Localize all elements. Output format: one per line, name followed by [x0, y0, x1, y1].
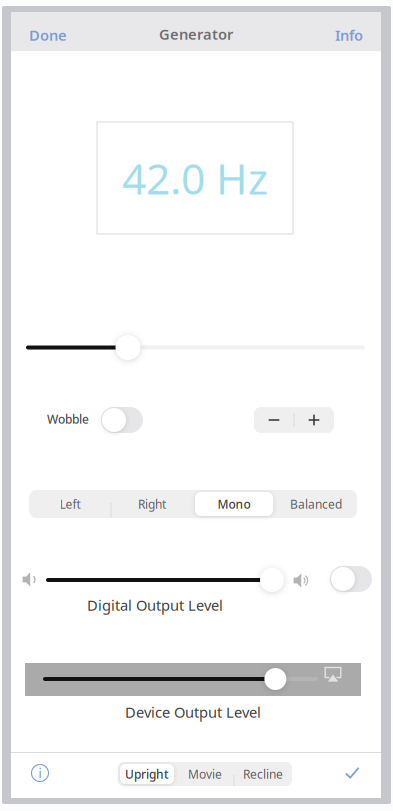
button[interactable]: Recline	[234, 762, 292, 786]
button[interactable]: Decrease frequency	[254, 407, 293, 433]
staticText: Device Output Level	[125, 702, 261, 722]
staticText: Generator	[159, 24, 233, 44]
button[interactable]: Right	[111, 490, 193, 518]
staticText: Done	[29, 25, 67, 45]
staticText: Upright	[125, 766, 169, 782]
staticText: Info	[335, 25, 363, 45]
button[interactable]: Info	[28, 761, 52, 785]
staticText: Wobble	[47, 411, 89, 427]
button[interactable]: Movie	[176, 762, 234, 786]
button[interactable]: Increase frequency	[294, 407, 333, 433]
button[interactable]: Wobble	[101, 407, 143, 433]
staticText: Recline	[243, 766, 283, 782]
button[interactable]: AirPlay	[323, 665, 343, 683]
button[interactable]: Info	[289, 22, 363, 48]
staticText: Movie	[188, 766, 222, 782]
button[interactable]: Upright	[118, 762, 176, 786]
staticText: i	[38, 765, 41, 781]
button[interactable]: Confirm	[342, 762, 364, 784]
staticText: Mono	[217, 496, 250, 512]
button[interactable]: Digital output	[330, 566, 372, 592]
button[interactable]: Left	[29, 490, 111, 518]
staticText: 42.0 Hz	[122, 150, 268, 206]
staticText: Balanced	[290, 496, 342, 512]
staticText: Right	[138, 496, 166, 512]
button[interactable]: Balanced	[275, 490, 357, 518]
button[interactable]: Done	[29, 22, 103, 48]
staticText: Digital Output Level	[87, 595, 223, 615]
staticText: Left	[59, 496, 80, 512]
button[interactable]: Mono	[193, 490, 275, 518]
